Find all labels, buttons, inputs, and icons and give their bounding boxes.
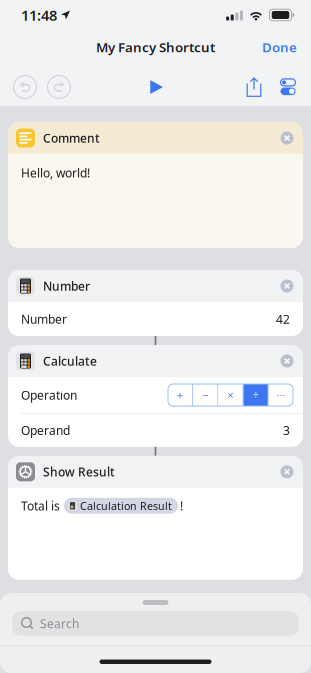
staticText: My Fancy Shortcut: [96, 38, 215, 56]
staticText: ···: [276, 388, 285, 402]
staticText: Operand: [21, 422, 70, 438]
button[interactable]: Operand: [8, 414, 303, 447]
staticText: Done: [262, 38, 297, 56]
button[interactable]: Share: [237, 69, 271, 105]
staticText: ÷: [253, 388, 259, 402]
staticText: 3: [283, 422, 290, 438]
button[interactable]: ···: [269, 384, 293, 406]
button[interactable]: Shortcut settings: [271, 69, 305, 105]
button[interactable]: Redo: [42, 69, 76, 105]
button[interactable]: Run shortcut: [138, 69, 174, 105]
button[interactable]: Calculate: [8, 345, 303, 377]
staticText: +: [177, 388, 183, 402]
staticText: Search: [40, 615, 79, 631]
staticText: Number: [21, 311, 67, 327]
button[interactable]: ×: [218, 384, 243, 406]
button[interactable]: Done: [252, 32, 311, 62]
button[interactable]: Hello, world!: [8, 154, 303, 248]
staticText: Number: [43, 278, 90, 294]
button[interactable]: Number: [8, 270, 303, 302]
staticText: Calculate: [43, 353, 97, 369]
staticText: Calculation Result: [80, 499, 172, 513]
button[interactable]: Total is: [8, 488, 303, 580]
staticText: 42: [276, 311, 290, 327]
button[interactable]: Search: [12, 611, 299, 636]
button[interactable]: +: [168, 384, 192, 406]
button[interactable]: Number: [8, 302, 303, 336]
staticText: Operation: [21, 387, 77, 403]
staticText: Comment: [43, 130, 100, 146]
staticText: 11:48: [21, 5, 57, 25]
staticText: !: [180, 498, 183, 514]
staticText: ×: [227, 388, 233, 402]
button[interactable]: Undo: [8, 69, 42, 105]
button[interactable]: Comment: [8, 122, 303, 154]
staticText: Hello, world!: [21, 165, 90, 181]
staticText: −: [202, 388, 208, 402]
button[interactable]: ÷: [244, 384, 268, 406]
staticText: Show Result: [43, 464, 115, 480]
staticText: Total is: [21, 498, 60, 514]
button[interactable]: −: [193, 384, 217, 406]
button[interactable]: Show Result: [8, 456, 303, 488]
